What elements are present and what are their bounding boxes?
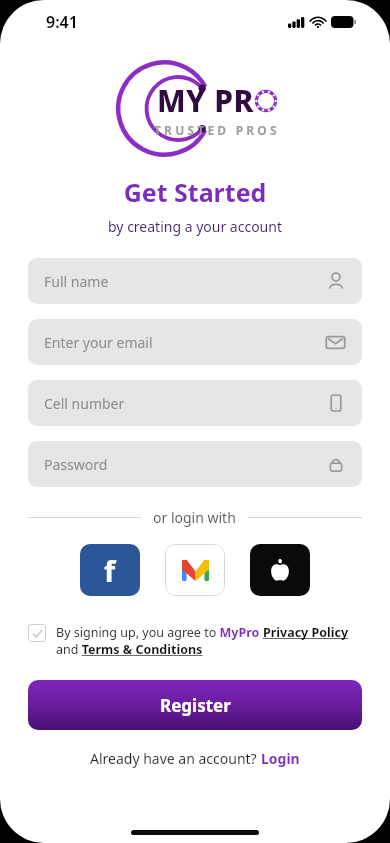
staticText: by creating a your account (0, 217, 390, 236)
button[interactable]: Already have an account? (90, 749, 300, 768)
staticText: Already have an account? (90, 749, 261, 768)
button[interactable]: Sign in with Google (165, 544, 225, 596)
button[interactable]: Enter your email (28, 319, 362, 365)
staticText: f (104, 551, 116, 590)
staticText: Get Started (0, 175, 390, 209)
button[interactable]: Sign in with Facebook (80, 544, 140, 596)
button[interactable]: Register (28, 680, 362, 730)
staticText: TRUSTED PROS (154, 122, 280, 138)
staticText: or login with (153, 508, 236, 527)
staticText: Password (44, 455, 326, 474)
staticText: Login (261, 749, 300, 768)
button[interactable]: Full name (28, 258, 362, 304)
staticText: Register (160, 694, 231, 717)
button[interactable]: Cell number (28, 380, 362, 426)
staticText: Enter your email (44, 333, 325, 352)
staticText: 9:41 (46, 11, 78, 33)
button[interactable]: Agree to terms checkbox (28, 624, 46, 642)
button[interactable]: Sign in with Apple (250, 544, 310, 596)
staticText: MY PR (157, 80, 254, 121)
staticText: By signing up, you agree to MyPro Privac… (56, 622, 362, 658)
staticText: Cell number (44, 394, 326, 413)
staticText: Full name (44, 272, 326, 291)
button[interactable]: Password (28, 441, 362, 487)
